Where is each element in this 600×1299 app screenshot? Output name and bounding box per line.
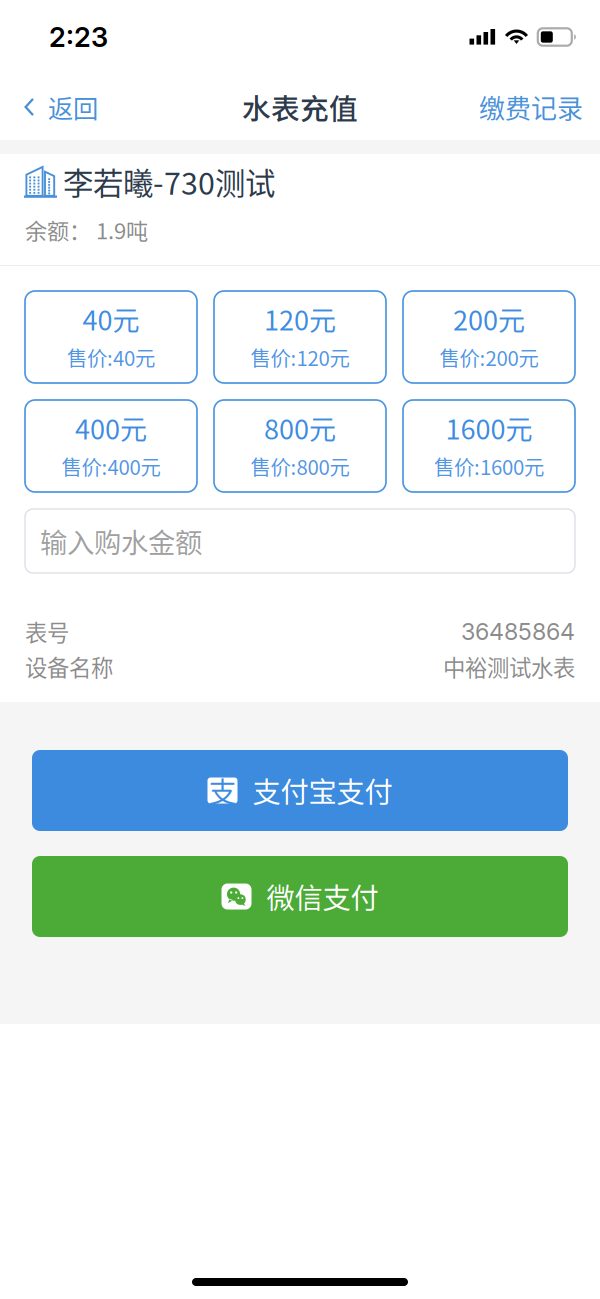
staticText: 水表充值 — [242, 86, 358, 128]
staticText: 售价:400元 — [61, 451, 160, 481]
button[interactable]: 支 — [32, 750, 568, 831]
staticText: 120元 — [264, 299, 336, 338]
staticText: 表号 — [25, 615, 69, 648]
staticText: 设备名称 — [25, 650, 113, 683]
button[interactable]: 输入购水金额 — [25, 509, 575, 573]
staticText: 售价:120元 — [250, 342, 349, 372]
staticText: 售价:800元 — [250, 451, 349, 481]
staticText: 微信支付 — [266, 876, 378, 917]
staticText: 支付宝支付 — [252, 770, 392, 811]
staticText: 200元 — [453, 299, 525, 338]
staticText: 售价:1600元 — [434, 451, 544, 481]
button[interactable]: 120元 — [214, 291, 386, 383]
staticText: 返回 — [48, 89, 98, 125]
button[interactable]: 400元 — [25, 400, 197, 492]
button[interactable]: 1600元 — [403, 400, 575, 492]
staticText: 36485864 — [461, 617, 575, 646]
button[interactable]: 800元 — [214, 400, 386, 492]
staticText: 中裕测试水表 — [443, 650, 575, 683]
button[interactable]: 40元 — [25, 291, 197, 383]
staticText: 李若曦-730测试 — [63, 159, 275, 203]
staticText: 支 — [208, 770, 236, 811]
button[interactable]: 微信支付 — [32, 856, 568, 937]
staticText: 售价:200元 — [439, 342, 538, 372]
staticText: 400元 — [75, 408, 147, 447]
button[interactable]: 200元 — [403, 291, 575, 383]
staticText: 2:23 — [49, 20, 108, 54]
staticText: 800元 — [264, 408, 336, 447]
staticText: 缴费记录 — [479, 88, 583, 126]
staticText: 输入购水金额 — [40, 521, 202, 561]
staticText: 售价:40元 — [67, 342, 155, 372]
staticText: 40元 — [82, 299, 139, 338]
staticText: 余额： 1.9吨 — [25, 213, 148, 245]
staticText: 1600元 — [445, 408, 532, 447]
button[interactable]: 缴费记录 — [462, 76, 600, 138]
button[interactable]: 返回 — [0, 76, 114, 138]
